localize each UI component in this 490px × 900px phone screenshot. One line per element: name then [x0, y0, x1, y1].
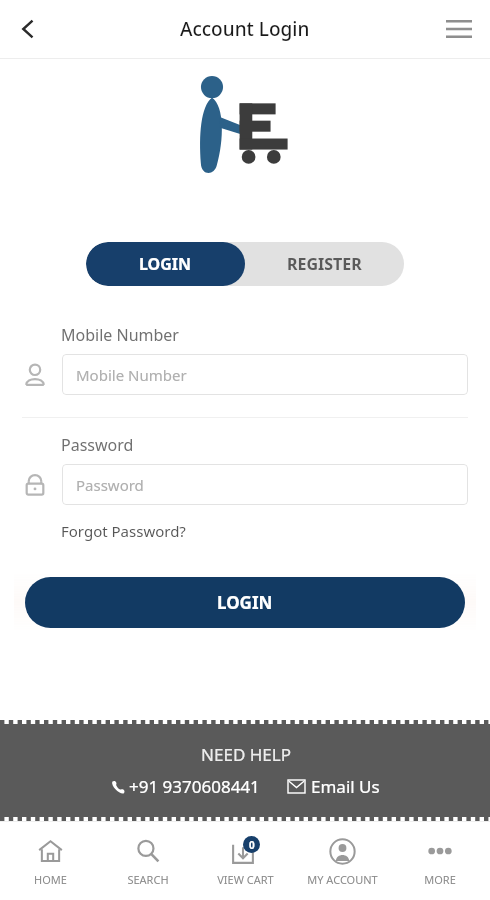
button[interactable]: Back — [6, 6, 52, 52]
staticText: MORE — [424, 872, 456, 887]
button[interactable]: Mobile Number — [62, 354, 468, 395]
staticText: Mobile Number — [76, 365, 187, 385]
button[interactable]: LOGIN — [86, 242, 245, 286]
button[interactable]: SEARCH — [101, 822, 195, 900]
staticText: NEED HELP — [201, 743, 291, 766]
button[interactable]: Forgot Password? — [61, 521, 186, 541]
staticText: LOGIN — [217, 591, 273, 614]
staticText: Mobile Number — [61, 324, 179, 346]
staticText: +91 9370608441 — [129, 775, 260, 798]
staticText: REGISTER — [287, 253, 362, 275]
button[interactable]: Menu — [436, 6, 482, 52]
button[interactable]: LOGIN — [25, 577, 465, 628]
staticText: Email Us — [311, 775, 380, 798]
button[interactable]: MORE — [393, 822, 487, 900]
staticText: Password — [76, 475, 144, 495]
button[interactable]: +91 9370608441 — [111, 775, 260, 798]
button[interactable]: 0 — [198, 822, 292, 900]
button[interactable]: Password — [62, 464, 468, 505]
staticText: 0 — [249, 838, 255, 852]
staticText: LOGIN — [139, 253, 192, 275]
staticText: SEARCH — [127, 872, 169, 887]
button[interactable]: REGISTER — [245, 242, 404, 286]
staticText: MY ACCOUNT — [307, 872, 378, 887]
button[interactable]: HOME — [3, 822, 97, 900]
staticText: HOME — [34, 872, 67, 887]
staticText: Account Login — [180, 16, 310, 42]
button[interactable]: Email Us — [288, 775, 380, 798]
staticText: Password — [61, 434, 134, 456]
staticText: VIEW CART — [217, 872, 274, 887]
button[interactable]: MY ACCOUNT — [295, 822, 389, 900]
